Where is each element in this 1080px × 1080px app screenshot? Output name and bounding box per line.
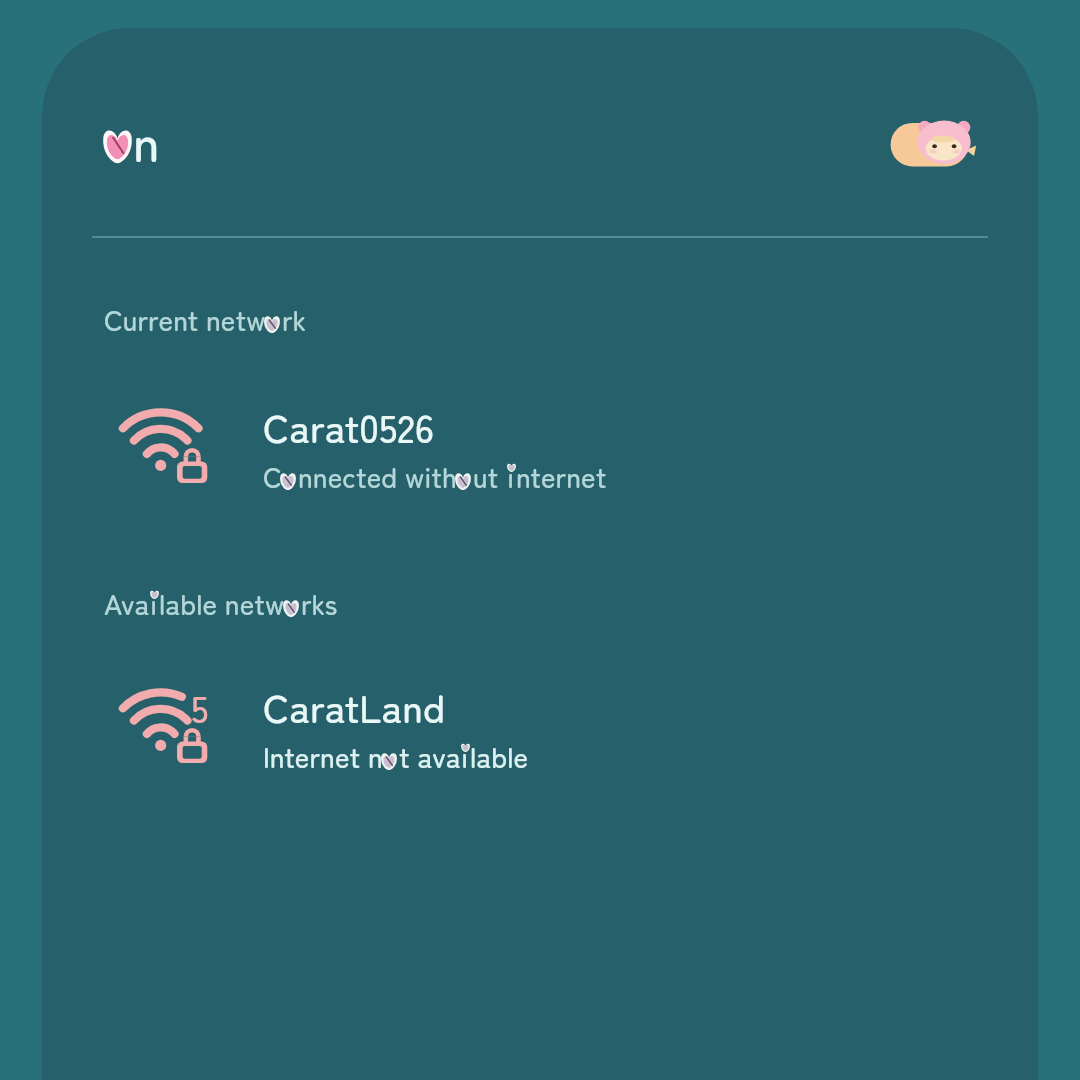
staticText: lable netw — [159, 583, 285, 624]
button[interactable]: Carat0526 — [42, 377, 1038, 517]
staticText: rk — [282, 299, 307, 340]
staticText: n — [133, 104, 160, 176]
staticText: ı — [150, 583, 158, 623]
staticText: t ava — [399, 736, 461, 777]
staticText: Carat0526 — [263, 398, 435, 454]
staticText: ut — [473, 456, 507, 497]
staticText: C — [263, 456, 282, 497]
staticText: Current netw — [104, 299, 266, 340]
staticText: Ava — [104, 583, 150, 624]
staticText: nternet — [516, 456, 607, 497]
staticText: rks — [301, 583, 338, 624]
staticText: nnected with — [298, 456, 457, 497]
staticText: 5 — [191, 680, 209, 734]
button[interactable]: Wi-Fi toggle, on — [890, 120, 980, 170]
staticText: CaratLand — [263, 678, 446, 734]
staticText: Internet n — [263, 736, 383, 777]
staticText: ı — [461, 736, 469, 776]
button[interactable]: 5 — [42, 657, 1038, 797]
staticText: ı — [507, 456, 515, 496]
staticText: lable — [470, 736, 529, 777]
